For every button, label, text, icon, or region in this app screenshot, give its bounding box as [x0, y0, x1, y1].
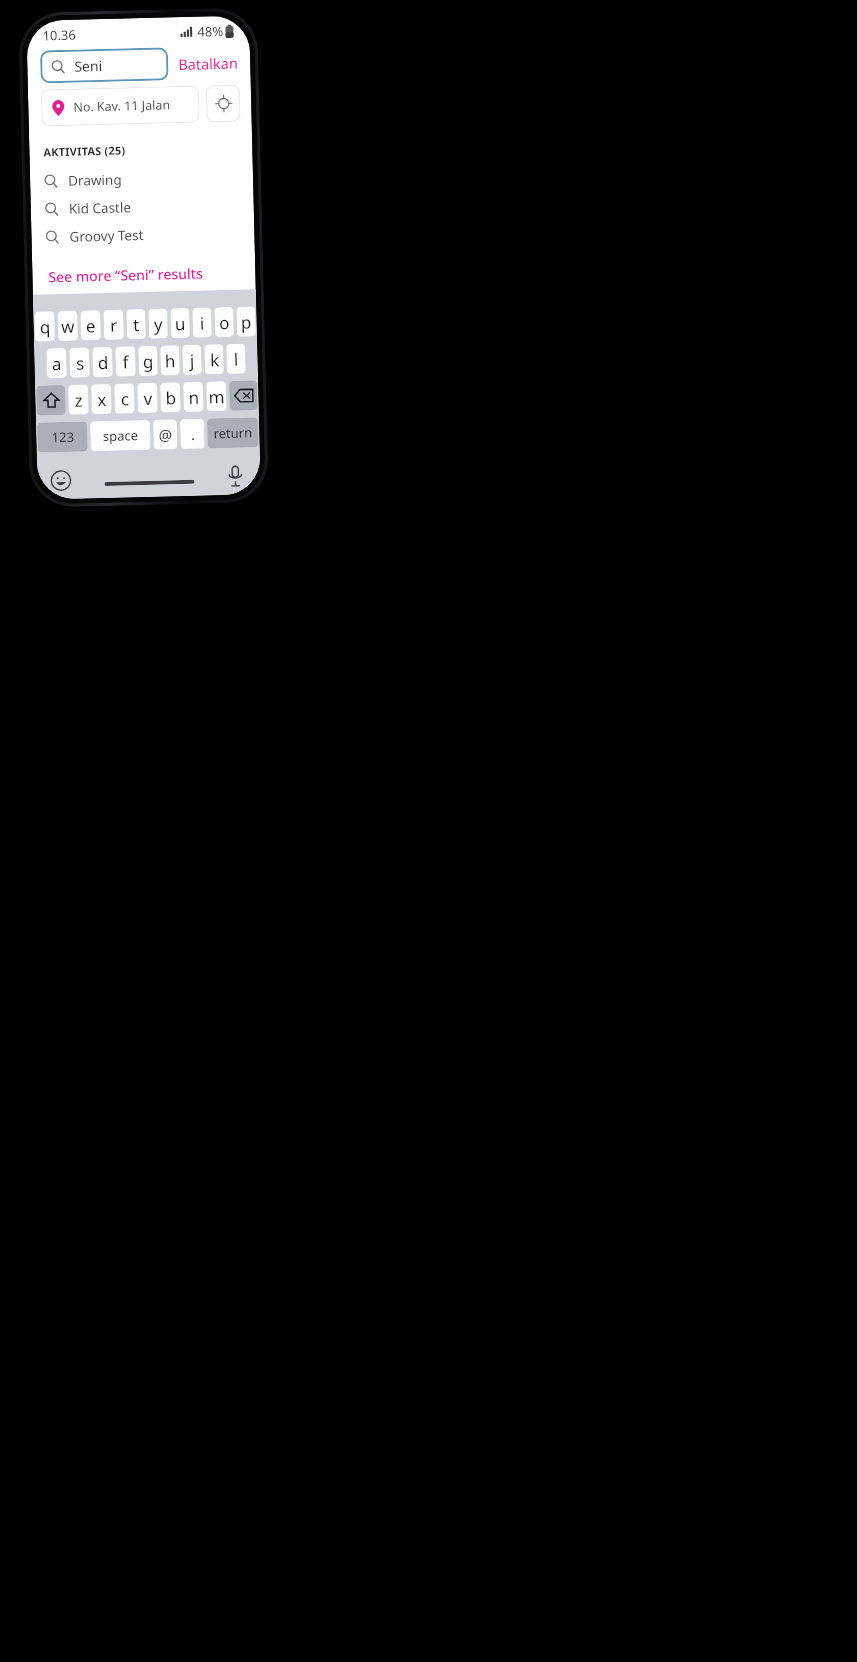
button[interactable]: q [34, 311, 55, 342]
staticText: o [218, 311, 230, 334]
button[interactable]: Batalkan [176, 47, 241, 80]
staticText: 10.36 [42, 26, 77, 44]
staticText: h [164, 349, 176, 373]
button[interactable]: u [170, 308, 190, 338]
staticText: y [153, 313, 163, 336]
button[interactable]: . [180, 419, 205, 449]
staticText: 123 [51, 428, 74, 446]
button[interactable]: l [226, 343, 246, 374]
button[interactable]: Use current location [206, 85, 241, 122]
staticText: v [143, 387, 153, 410]
staticText: return [213, 423, 252, 442]
button[interactable]: space [90, 420, 151, 451]
staticText: w [60, 315, 75, 338]
staticText: See more “Seni” results [48, 263, 204, 286]
button[interactable]: t [126, 309, 146, 339]
button[interactable]: n [183, 382, 204, 412]
staticText: n [188, 386, 200, 409]
button[interactable]: k [204, 344, 224, 375]
staticText: t [132, 313, 140, 336]
staticText: r [109, 314, 118, 337]
staticText: j [189, 349, 195, 372]
staticText: Batalkan [178, 53, 238, 74]
button[interactable]: Groovy Test [31, 218, 255, 252]
button[interactable]: r [103, 309, 124, 340]
button[interactable]: d [92, 347, 113, 377]
staticText: k [209, 348, 220, 371]
staticText: x [97, 388, 107, 411]
staticText: Kid Castle [69, 198, 132, 218]
button[interactable]: o [214, 307, 234, 337]
button[interactable]: s [69, 347, 90, 378]
staticText: c [120, 387, 130, 411]
staticText: . [190, 424, 196, 444]
staticText: i [199, 311, 205, 335]
staticText: 48% [197, 22, 224, 41]
staticText: z [74, 388, 83, 412]
button[interactable]: See more “Seni” results [32, 256, 256, 293]
staticText: AKTIVITAS (25) [43, 142, 125, 159]
button[interactable]: y [148, 308, 168, 339]
staticText: m [208, 385, 225, 408]
button[interactable]: return [207, 417, 259, 448]
button[interactable]: Voice input [222, 462, 249, 489]
staticText: u [174, 312, 186, 335]
staticText: space [102, 426, 138, 445]
button[interactable]: Seni [40, 47, 169, 83]
button[interactable]: No. Kav. 11 Jalan Professor ... [41, 86, 200, 126]
button[interactable]: Shift [36, 385, 66, 416]
button[interactable]: b [160, 382, 181, 413]
button[interactable]: g [138, 346, 158, 376]
staticText: q [39, 315, 51, 339]
button[interactable]: Emoji [47, 467, 74, 493]
button[interactable]: m [206, 381, 227, 411]
staticText: d [97, 351, 109, 374]
button[interactable]: Kid Castle [30, 190, 254, 224]
staticText: e [85, 314, 96, 337]
button[interactable]: e [80, 310, 101, 341]
button[interactable]: a [46, 348, 67, 378]
button[interactable]: h [160, 345, 180, 376]
button[interactable]: Drawing [30, 162, 253, 196]
staticText: f [122, 350, 129, 373]
staticText: l [233, 348, 239, 371]
staticText: Drawing [68, 170, 122, 190]
button[interactable]: Backspace [229, 380, 258, 411]
button[interactable]: w [57, 311, 78, 341]
button[interactable]: z [68, 384, 89, 415]
button[interactable]: p [236, 306, 256, 337]
staticText: Groovy Test [69, 226, 144, 246]
button[interactable]: i [192, 307, 212, 338]
button[interactable]: j [182, 345, 202, 375]
staticText: No. Kav. 11 Jalan Professor ... [73, 96, 199, 116]
button[interactable]: f [115, 346, 136, 377]
button[interactable]: @ [153, 419, 178, 450]
staticText: Seni [74, 56, 103, 76]
staticText: s [75, 351, 85, 375]
button[interactable]: v [137, 383, 158, 413]
staticText: @ [158, 424, 173, 445]
staticText: p [240, 310, 252, 334]
button[interactable]: 123 [37, 421, 88, 453]
button[interactable]: x [91, 384, 112, 414]
staticText: b [165, 386, 177, 409]
staticText: a [51, 352, 62, 375]
staticText: g [142, 350, 154, 373]
button[interactable]: c [114, 383, 135, 414]
